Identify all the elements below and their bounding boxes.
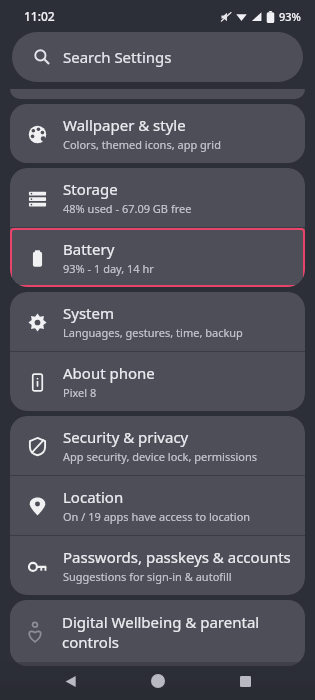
button[interactable]: Battery — [10, 228, 305, 287]
button[interactable]: Storage — [10, 168, 305, 227]
staticText: 48% used - 67.09 GB free — [63, 201, 192, 216]
button[interactable]: Digital Wellbeing & parental controls — [10, 600, 305, 666]
button[interactable]: Security & privacy — [10, 416, 305, 475]
button[interactable]: Back — [53, 664, 87, 698]
staticText: Pixel 8 — [63, 385, 97, 400]
button[interactable]: Home — [141, 664, 175, 698]
staticText: 11:02 — [24, 8, 55, 24]
staticText: Digital Wellbeing & parental controls — [62, 612, 291, 652]
staticText: About phone — [63, 363, 155, 383]
staticText: System — [63, 303, 114, 323]
button[interactable]: About phone — [10, 352, 305, 411]
staticText: Suggestions for sign-in & autofill — [63, 569, 232, 584]
button[interactable]: Passwords, passkeys & accounts — [10, 536, 305, 595]
button[interactable]: Location — [10, 476, 305, 535]
staticText: Location — [63, 487, 124, 507]
staticText: Search Settings — [63, 47, 172, 67]
staticText: Languages, gestures, time, backup — [63, 325, 243, 340]
staticText: Colors, themed icons, app grid — [63, 137, 221, 152]
staticText: Wallpaper & style — [63, 115, 186, 135]
staticText: App security, device lock, permissions — [63, 449, 258, 464]
staticText: Passwords, passkeys & accounts — [63, 547, 291, 567]
button[interactable]: Search Settings — [12, 32, 303, 82]
staticText: 93% — [279, 9, 301, 24]
button[interactable] — [10, 89, 305, 99]
button[interactable]: System — [10, 292, 305, 351]
staticText: 93% - 1 day, 14 hr — [63, 261, 154, 276]
staticText: Battery — [63, 239, 115, 259]
button[interactable]: Recents — [228, 664, 262, 698]
staticText: Storage — [63, 179, 118, 199]
staticText: Security & privacy — [63, 427, 189, 447]
button[interactable]: Wallpaper & style — [10, 104, 305, 163]
staticText: On / 19 apps have access to location — [63, 509, 251, 524]
